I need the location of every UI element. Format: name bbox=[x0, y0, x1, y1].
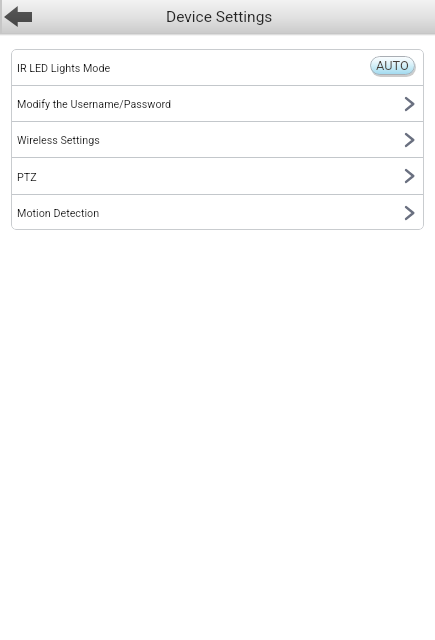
staticText: Modify the Username/Password bbox=[17, 98, 172, 111]
other: Open bbox=[405, 133, 414, 147]
other: Open bbox=[405, 97, 414, 111]
staticText: PTZ bbox=[17, 171, 37, 184]
button[interactable]: PTZ bbox=[11, 158, 424, 194]
staticText: Wireless Settings bbox=[17, 134, 100, 147]
other: Open bbox=[405, 206, 414, 220]
staticText: Device Settings bbox=[166, 8, 273, 26]
staticText: AUTO bbox=[376, 58, 409, 73]
staticText: IR LED Lights Mode bbox=[17, 62, 111, 75]
button[interactable]: IR LED Lights Mode bbox=[11, 49, 424, 85]
button[interactable]: Back bbox=[0, 0, 38, 33]
button[interactable]: Wireless Settings bbox=[11, 122, 424, 157]
staticText: Motion Detection bbox=[17, 207, 100, 220]
button[interactable]: AUTO mode bbox=[370, 56, 416, 78]
button[interactable]: Motion Detection bbox=[11, 195, 424, 230]
button[interactable]: Modify the Username/Password bbox=[11, 86, 424, 121]
other: Open bbox=[405, 169, 414, 183]
